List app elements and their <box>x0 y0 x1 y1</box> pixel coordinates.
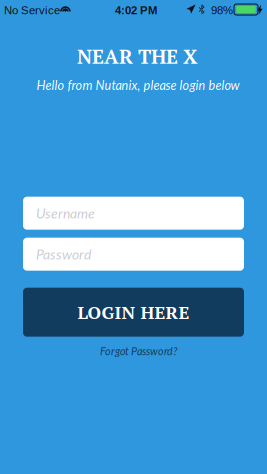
button[interactable]: Username <box>23 197 244 230</box>
staticText: Username <box>36 205 95 222</box>
staticText: No Service <box>4 4 60 17</box>
staticText: Forgot Password? <box>100 345 177 357</box>
staticText: Hello from Nutanix, please login below <box>36 77 239 93</box>
staticText: LOGIN HERE <box>77 300 189 324</box>
staticText: Password <box>36 246 91 263</box>
staticText: NEAR THE X <box>77 43 198 69</box>
button[interactable]: LOGIN HERE <box>23 288 244 337</box>
staticText: 4:02 PM <box>115 4 157 17</box>
staticText: 98% <box>211 4 233 17</box>
button[interactable]: Forgot Password? <box>90 345 177 357</box>
button[interactable]: Password <box>23 238 244 271</box>
